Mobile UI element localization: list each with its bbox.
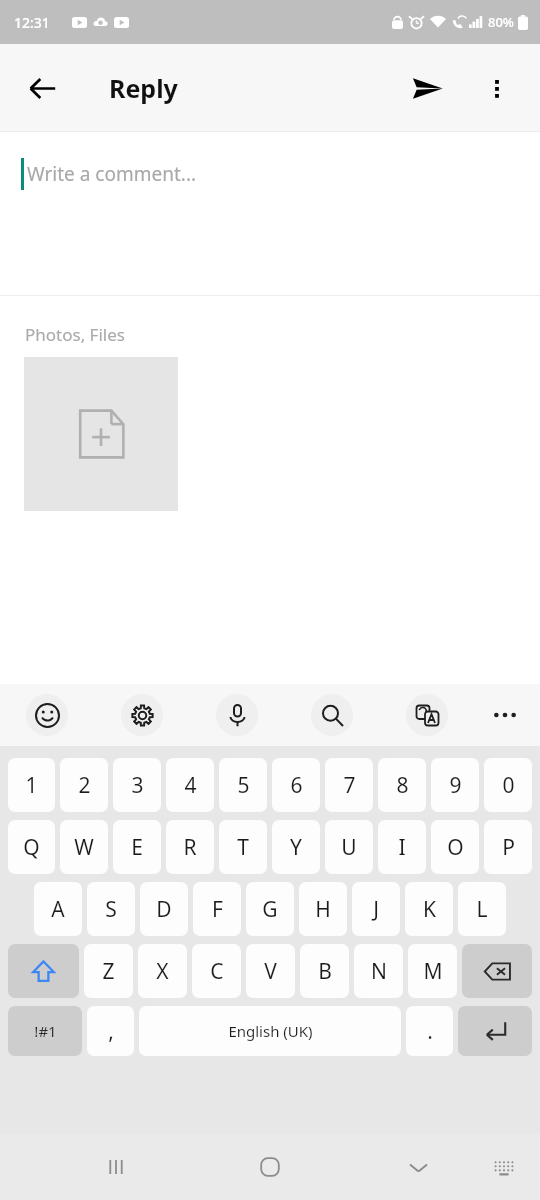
staticText: U (341, 833, 357, 862)
button[interactable]: Recents (96, 1147, 136, 1187)
staticText: F (212, 895, 223, 924)
staticText: V (264, 957, 277, 986)
button[interactable]: J (352, 882, 400, 936)
button[interactable]: Shift (8, 944, 79, 998)
staticText: B (318, 957, 332, 986)
button[interactable]: W (60, 820, 108, 874)
staticText: I (398, 833, 406, 862)
staticText: 2 (78, 771, 91, 800)
button[interactable]: Hide keyboard (398, 1147, 438, 1187)
button[interactable]: 4 (166, 758, 214, 812)
button[interactable]: P (484, 820, 532, 874)
button[interactable]: 7 (325, 758, 373, 812)
button[interactable]: U (325, 820, 373, 874)
button[interactable]: 6 (272, 758, 320, 812)
button[interactable]: R (166, 820, 214, 874)
button[interactable]: 8 (378, 758, 426, 812)
button[interactable]: C (192, 944, 241, 998)
staticText: T (237, 833, 249, 862)
button[interactable]: 5 (219, 758, 267, 812)
button[interactable]: T (219, 820, 267, 874)
button[interactable]: G (246, 882, 294, 936)
button[interactable]: H (299, 882, 347, 936)
staticText: Reply (109, 71, 178, 105)
staticText: 7 (343, 771, 356, 800)
button[interactable]: Enter (458, 1006, 532, 1056)
button[interactable]: More options (469, 60, 525, 116)
staticText: !#1 (34, 1021, 57, 1041)
staticText: 0 (502, 771, 515, 800)
staticText: G (262, 895, 278, 924)
staticText: 12:31 (14, 13, 50, 32)
button[interactable]: Add attachment (24, 357, 178, 511)
staticText: Q (23, 833, 40, 862)
staticText: J (373, 895, 379, 924)
staticText: N (371, 957, 387, 986)
button[interactable]: V (246, 944, 295, 998)
button[interactable]: D (140, 882, 188, 936)
staticText: , (108, 1017, 114, 1046)
button[interactable]: 2 (60, 758, 108, 812)
staticText: . (427, 1017, 433, 1046)
button[interactable]: A (34, 882, 82, 936)
button[interactable]: 1 (8, 758, 55, 812)
button[interactable]: Emoji (26, 694, 68, 736)
staticText: S (105, 895, 117, 924)
button[interactable]: !#1 (8, 1006, 82, 1056)
button[interactable]: . (406, 1006, 453, 1056)
staticText: Photos, Files (25, 323, 125, 346)
staticText: O (447, 833, 464, 862)
button[interactable]: English (UK) (139, 1006, 401, 1056)
button[interactable]: M (408, 944, 457, 998)
button[interactable]: 9 (431, 758, 479, 812)
button[interactable]: Voice input (216, 694, 258, 736)
staticText: Z (102, 957, 115, 986)
staticText: X (156, 957, 169, 986)
button[interactable]: F (193, 882, 241, 936)
staticText: 4 (184, 771, 197, 800)
button[interactable]: , (87, 1006, 134, 1056)
button[interactable]: Home (250, 1147, 290, 1187)
button[interactable]: Settings (121, 694, 163, 736)
staticText: 3 (131, 771, 144, 800)
button[interactable]: Y (272, 820, 320, 874)
button[interactable]: O (431, 820, 479, 874)
staticText: 80% (488, 13, 514, 31)
staticText: Write a comment... (27, 161, 197, 187)
staticText: W (74, 833, 94, 862)
staticText: M (423, 957, 443, 986)
button[interactable]: More keyboard options (488, 698, 522, 732)
button[interactable]: Back (14, 60, 70, 116)
button[interactable]: B (300, 944, 349, 998)
staticText: 5 (237, 771, 250, 800)
button[interactable]: E (113, 820, 161, 874)
staticText: 9 (449, 771, 462, 800)
button[interactable]: I (378, 820, 426, 874)
button[interactable]: K (405, 882, 453, 936)
button[interactable]: X (138, 944, 187, 998)
button[interactable]: S (87, 882, 135, 936)
button[interactable]: Send (399, 60, 455, 116)
button[interactable]: L (458, 882, 506, 936)
staticText: H (315, 895, 331, 924)
button[interactable]: Switch keyboard (484, 1147, 524, 1187)
staticText: 6 (290, 771, 303, 800)
staticText: P (502, 833, 515, 862)
staticText: K (423, 895, 436, 924)
staticText: A (51, 895, 65, 924)
button[interactable]: 3 (113, 758, 161, 812)
button[interactable]: Z (84, 944, 133, 998)
button[interactable]: Q (8, 820, 55, 874)
staticText: C (210, 957, 224, 986)
staticText: R (183, 833, 197, 862)
staticText: D (156, 895, 172, 924)
staticText: L (476, 895, 488, 924)
button[interactable]: 0 (484, 758, 532, 812)
staticText: 8 (396, 771, 409, 800)
button[interactable]: Backspace (462, 944, 532, 998)
button[interactable]: N (354, 944, 403, 998)
button[interactable]: Translate (406, 694, 448, 736)
button[interactable]: Search (311, 694, 353, 736)
button[interactable]: Write a comment... (0, 132, 540, 296)
staticText: Y (290, 833, 302, 862)
